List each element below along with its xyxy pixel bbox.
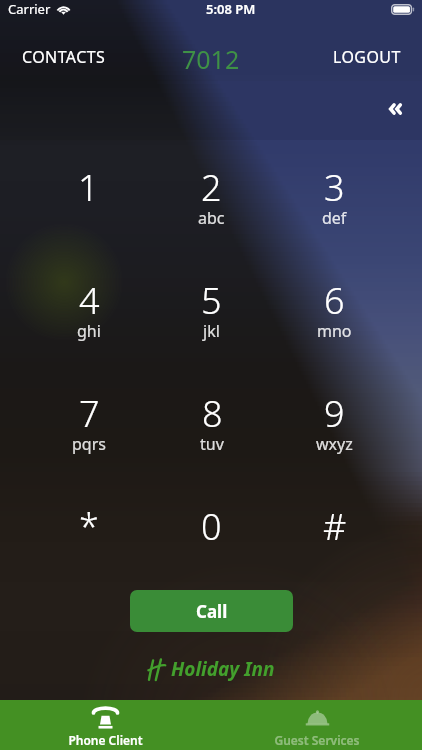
button[interactable]: 0 xyxy=(150,484,273,597)
staticText: # xyxy=(323,502,347,551)
button[interactable]: Call xyxy=(130,590,293,632)
staticText: CONTACTS xyxy=(22,46,106,68)
staticText: 4 xyxy=(79,276,100,325)
button[interactable]: LOGOUT xyxy=(319,36,422,78)
staticText: * xyxy=(79,502,99,551)
staticText: 5:08 PM xyxy=(206,0,256,18)
staticText: 1 xyxy=(78,163,99,212)
button[interactable]: 8 xyxy=(150,371,273,484)
staticText: tuv xyxy=(200,433,224,455)
staticText: mno xyxy=(317,320,352,342)
staticText: 8 xyxy=(202,389,223,438)
staticText: abc xyxy=(198,207,225,229)
staticText: 7 xyxy=(79,389,100,438)
button[interactable]: 4 xyxy=(27,258,150,371)
button[interactable]: * xyxy=(27,484,150,597)
staticText: pqrs xyxy=(72,433,106,455)
button[interactable]: 3 xyxy=(273,145,396,258)
staticText: 3 xyxy=(324,163,345,212)
button[interactable]: 5 xyxy=(150,258,273,371)
button[interactable]: CONTACTS xyxy=(0,36,120,78)
staticText: Carrier xyxy=(8,0,51,18)
staticText: 7012 xyxy=(182,42,240,76)
staticText: LOGOUT xyxy=(333,46,401,68)
button[interactable]: Guest Services xyxy=(211,700,422,750)
staticText: jkl xyxy=(203,320,220,342)
button[interactable]: 7 xyxy=(27,371,150,484)
staticText: wxyz xyxy=(316,433,353,455)
staticText: 2 xyxy=(201,163,222,212)
button[interactable]: 2 xyxy=(150,145,273,258)
staticText: Holiday Inn xyxy=(171,656,275,682)
staticText: 0 xyxy=(201,502,222,551)
button[interactable]: 6 xyxy=(273,258,396,371)
staticText: 5 xyxy=(201,276,222,325)
staticText: Phone Client xyxy=(68,732,143,748)
button[interactable]: Phone Client xyxy=(0,700,211,750)
staticText: Call xyxy=(196,600,228,623)
staticText: 9 xyxy=(324,389,345,438)
staticText: ghi xyxy=(77,320,101,342)
button[interactable]: # xyxy=(273,484,396,597)
button[interactable]: Back xyxy=(376,90,416,128)
staticText: Guest Services xyxy=(274,732,360,748)
button[interactable]: 9 xyxy=(273,371,396,484)
staticText: def xyxy=(322,207,347,229)
button[interactable]: 1 xyxy=(27,145,150,258)
staticText: 6 xyxy=(324,276,345,325)
